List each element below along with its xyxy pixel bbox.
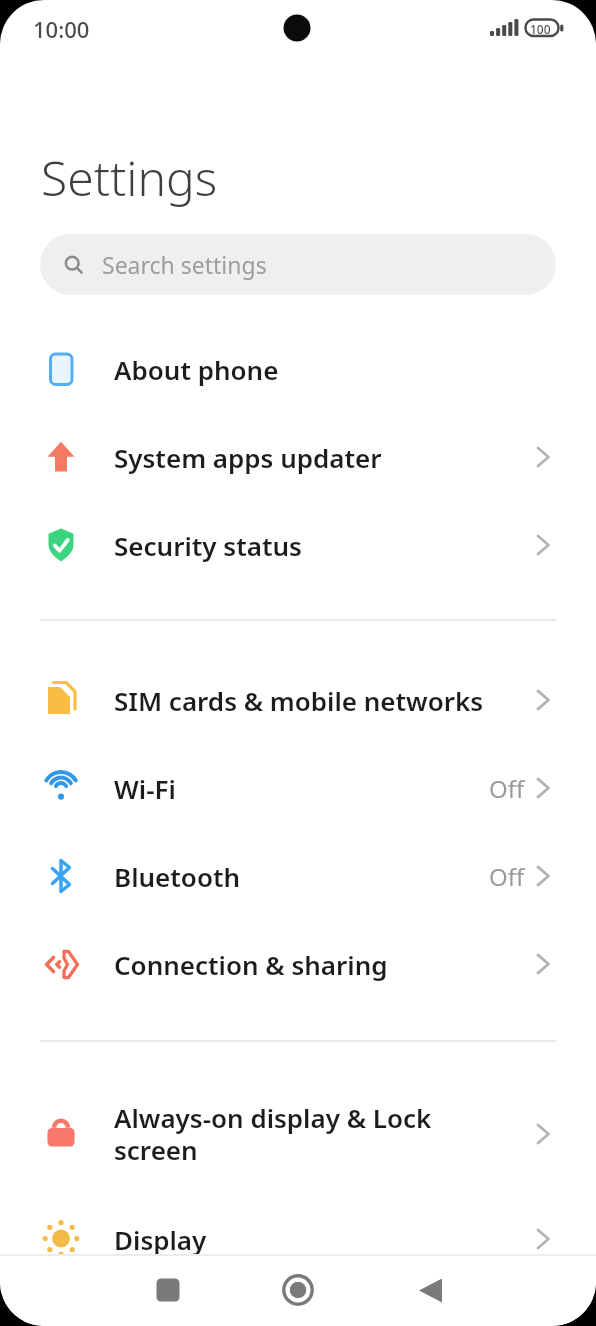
button[interactable]: System apps updater (0, 413, 596, 501)
button[interactable]: Wi-Fi (0, 744, 596, 832)
button[interactable]: Always-on display & Lock screen (0, 1073, 596, 1195)
staticText: System apps updater (114, 440, 536, 475)
staticText: Settings (41, 145, 218, 210)
button[interactable]: Display (0, 1195, 596, 1283)
button[interactable]: Search settings (40, 234, 556, 295)
staticText: Off (489, 772, 525, 805)
button[interactable]: SIM cards & mobile networks (0, 656, 596, 744)
staticText: Always-on display & Lock screen (114, 1100, 536, 1168)
staticText: Off (489, 860, 525, 893)
staticText: Security status (114, 528, 536, 563)
button[interactable]: About phone (0, 325, 596, 413)
staticText: About phone (114, 352, 551, 387)
staticText: Bluetooth (114, 859, 489, 894)
staticText: 10:00 (33, 14, 90, 44)
staticText: 100 (530, 21, 551, 37)
button[interactable] (400, 1260, 460, 1320)
staticText: Display (114, 1222, 536, 1257)
button[interactable] (268, 1260, 328, 1320)
staticText: Wi-Fi (114, 771, 489, 806)
button[interactable]: Bluetooth (0, 832, 596, 920)
button[interactable]: Security status (0, 501, 596, 589)
button[interactable]: Connection & sharing (0, 920, 596, 1008)
staticText: Search settings (102, 249, 267, 280)
staticText: Connection & sharing (114, 947, 536, 982)
staticText: SIM cards & mobile networks (114, 683, 536, 718)
button[interactable] (138, 1260, 198, 1320)
